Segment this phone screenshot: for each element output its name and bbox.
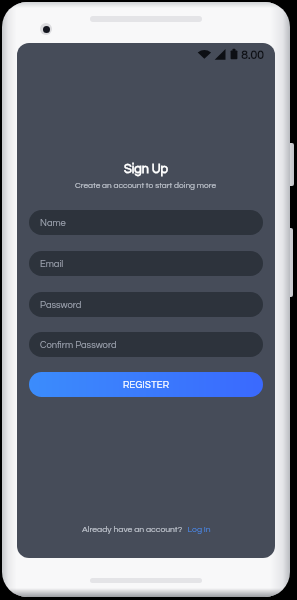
staticText: Password	[40, 300, 82, 310]
staticText: Already have an account? Log In	[82, 525, 211, 534]
button[interactable]: REGISTER	[29, 372, 263, 397]
staticText: Name	[40, 218, 66, 228]
staticText: REGISTER	[123, 380, 170, 390]
staticText: Sign Up	[124, 163, 168, 176]
button[interactable]: Already have an account? Log In	[82, 525, 211, 534]
staticText: Create an account to start doing more	[75, 181, 217, 190]
staticText: Email	[40, 259, 64, 269]
staticText: 8.00	[241, 49, 264, 62]
button[interactable]: Confirm Password	[29, 332, 263, 357]
button[interactable]: Name	[29, 210, 263, 235]
button[interactable]: Email	[29, 251, 263, 276]
button[interactable]: Password	[29, 292, 263, 317]
staticText: Confirm Password	[40, 340, 117, 350]
